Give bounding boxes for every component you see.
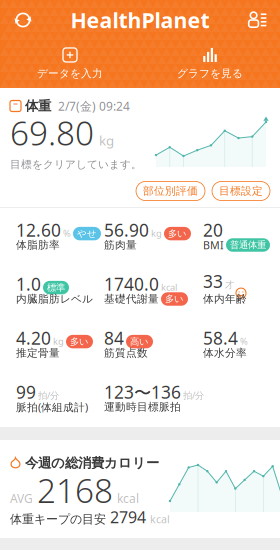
- staticText: 20: [203, 218, 223, 241]
- staticText: グラフを見る: [177, 67, 243, 80]
- staticText: 標準: [47, 282, 65, 293]
- staticText: やせ: [77, 228, 97, 239]
- staticText: 84: [104, 326, 124, 349]
- staticText: 1.0: [16, 272, 41, 295]
- staticText: 運動時目標脈拍: [104, 400, 181, 413]
- staticText: BMI: [203, 238, 224, 252]
- staticText: 体脂肪率: [16, 238, 60, 251]
- staticText: 脈拍(体組成計): [16, 400, 88, 414]
- staticText: 多い: [70, 336, 89, 347]
- staticText: 2/7(金) 09:24: [55, 98, 130, 114]
- staticText: 多い: [165, 293, 184, 305]
- staticText: 内臓脂肪レベル: [16, 292, 93, 305]
- staticText: 筋肉量: [104, 238, 137, 251]
- staticText: 今週の総消費カロリー: [25, 455, 159, 471]
- staticText: 筋質点数: [104, 346, 148, 359]
- staticText: %: [240, 335, 248, 347]
- staticText: kcal: [117, 490, 139, 506]
- staticText: 99: [16, 380, 36, 403]
- button[interactable]: Profile: [240, 4, 274, 36]
- staticText: 体重: [25, 98, 51, 114]
- staticText: 部位別評価: [143, 184, 198, 197]
- staticText: 56.90: [104, 218, 149, 241]
- staticText: HealthPlanet: [70, 6, 209, 34]
- staticText: 12.60: [16, 218, 61, 241]
- staticText: 58.4: [203, 326, 238, 349]
- staticText: 高い: [130, 336, 149, 347]
- staticText: kcal: [150, 512, 170, 526]
- staticText: 才: [225, 279, 234, 291]
- staticText: 拍/分: [183, 389, 204, 401]
- staticText: 目標をクリアしています。: [10, 158, 142, 171]
- staticText: データを入力: [37, 67, 103, 80]
- button[interactable]: データを入力: [0, 42, 140, 86]
- staticText: 拍/分: [38, 389, 59, 401]
- staticText: kcal: [161, 281, 177, 293]
- staticText: 1740.0: [104, 272, 159, 295]
- button[interactable]: Sync: [6, 4, 40, 36]
- staticText: 基礎代謝量: [104, 292, 159, 305]
- staticText: 体内年齢: [203, 292, 247, 305]
- staticText: 4.20: [16, 326, 51, 349]
- staticText: 体重キープの目安: [10, 512, 106, 526]
- staticText: 2168: [37, 468, 113, 512]
- button[interactable]: 目標設定: [212, 181, 270, 200]
- staticText: 推定骨量: [16, 346, 60, 359]
- staticText: kg: [151, 227, 162, 239]
- staticText: 多い: [168, 228, 187, 239]
- staticText: kg: [99, 131, 114, 149]
- staticText: 2794: [110, 506, 146, 528]
- staticText: 体水分率: [203, 346, 247, 359]
- staticText: 69.80: [10, 110, 94, 155]
- button[interactable]: 部位別評価: [136, 181, 205, 200]
- staticText: 目標設定: [219, 184, 263, 197]
- button[interactable]: グラフを見る: [140, 42, 280, 86]
- staticText: 33: [203, 270, 223, 293]
- staticText: 123〜136: [104, 380, 181, 403]
- staticText: AVG: [10, 490, 33, 506]
- staticText: kg: [53, 335, 64, 347]
- staticText: %: [63, 227, 71, 239]
- staticText: 普通体重: [230, 239, 266, 251]
